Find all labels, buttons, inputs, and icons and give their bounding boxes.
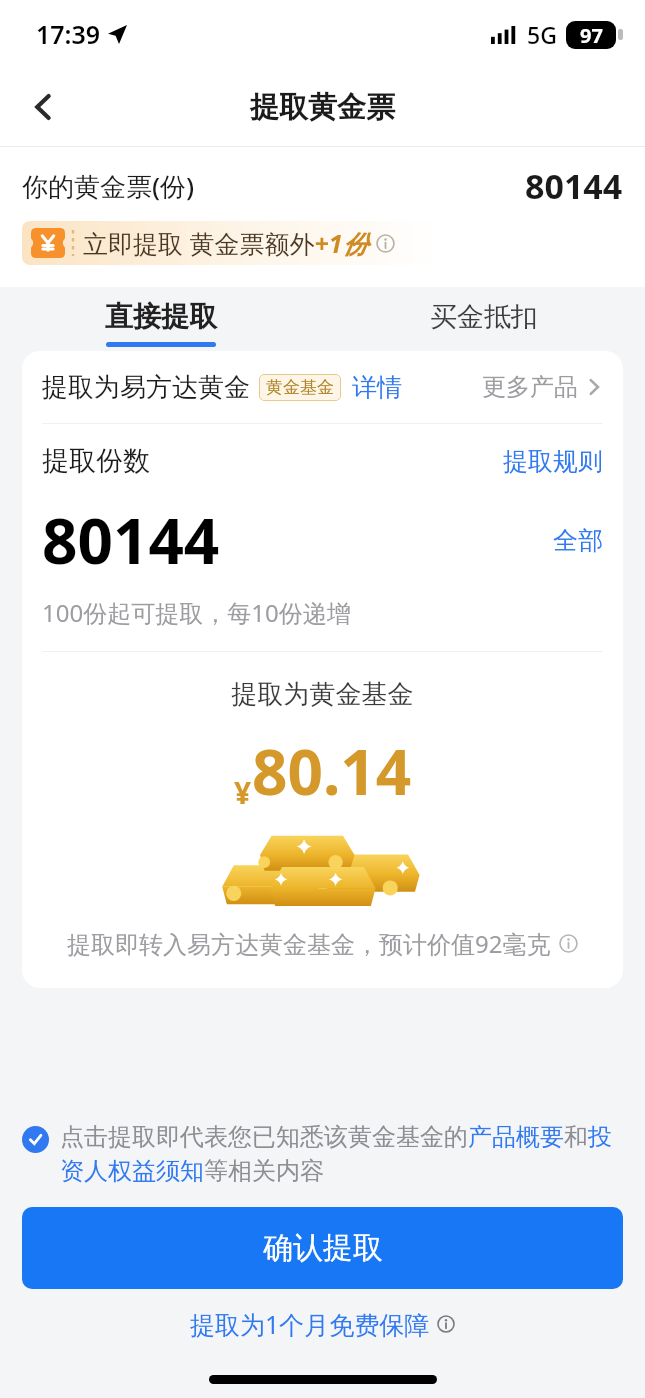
- other: Agree checkbox: [22, 1126, 49, 1153]
- staticText: 提取份数: [42, 444, 150, 478]
- staticText: 提取即转入易方达黄金基金，预计价值92毫克: [67, 927, 551, 960]
- staticText: 买金抵扣: [430, 300, 538, 334]
- staticText: 立即提取 黄金票额外+1份: [83, 226, 368, 260]
- staticText: 5G: [527, 19, 557, 50]
- staticText: 80.14: [252, 729, 412, 813]
- staticText: 提取为易方达黄金: [42, 371, 250, 404]
- staticText: 详情: [352, 372, 402, 403]
- button[interactable]: Back: [16, 79, 72, 135]
- staticText: 提取黄金票: [250, 89, 395, 126]
- staticText: 更多产品: [482, 372, 578, 402]
- button[interactable]: 全部: [553, 525, 603, 556]
- staticText: 97: [580, 22, 603, 49]
- staticText: 100份起可提取，每10份递增: [42, 596, 351, 629]
- staticText: 17:39: [36, 17, 101, 51]
- staticText: 直接提取: [105, 299, 217, 334]
- staticText: 全部: [553, 525, 603, 556]
- staticText: ¥: [234, 772, 252, 813]
- staticText: 80144: [525, 163, 623, 209]
- button[interactable]: Agree checkbox: [22, 1122, 619, 1187]
- button[interactable]: 直接提取: [0, 287, 322, 351]
- staticText: 80144: [42, 498, 220, 582]
- button[interactable]: 买金抵扣: [322, 287, 645, 351]
- staticText: 提取为黄金基金: [22, 678, 623, 711]
- button[interactable]: 提取为易方达黄金: [22, 351, 623, 423]
- button[interactable]: 提取为1个月免费保障: [0, 1307, 645, 1341]
- button[interactable]: 确认提取: [22, 1207, 623, 1289]
- button[interactable]: 提取规则: [503, 446, 603, 477]
- button[interactable]: 立即提取 黄金票额外+1份: [22, 221, 645, 265]
- staticText: 提取为1个月免费保障: [190, 1307, 430, 1341]
- staticText: 提取规则: [503, 446, 603, 477]
- staticText: 你的黄金票(份): [22, 168, 195, 204]
- staticText: 确认提取: [263, 1229, 383, 1267]
- staticText: 点击提取即代表您已知悉该黄金基金的产品概要和投资人权益须知等相关内容: [60, 1122, 619, 1187]
- staticText: 黄金基金: [266, 377, 334, 398]
